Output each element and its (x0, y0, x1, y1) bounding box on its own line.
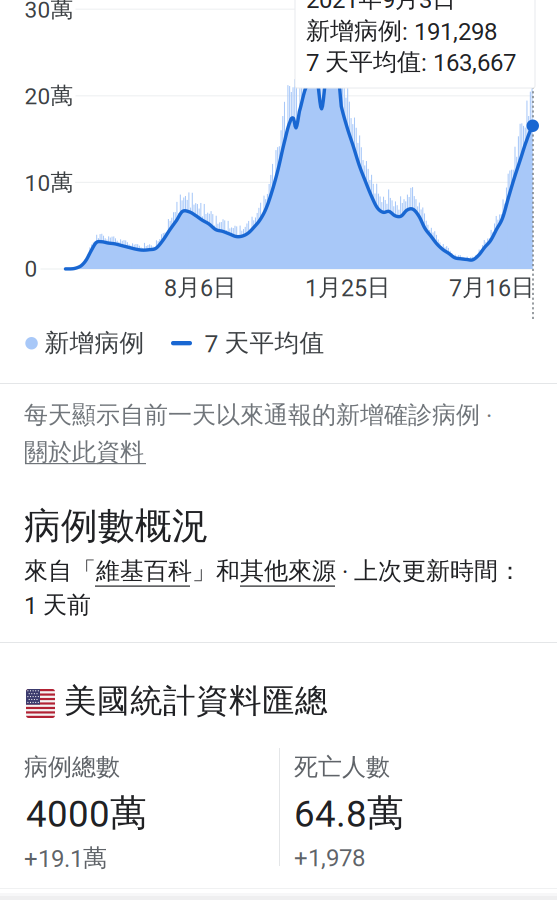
button[interactable]: 關於此資料 (24, 435, 150, 469)
staticText: 新增病例: 191,298 (306, 16, 497, 46)
staticText: 死亡人數 (294, 752, 390, 782)
staticText: 8月6日 (164, 273, 236, 302)
staticText: 新增病例 (44, 327, 144, 359)
staticText: 來自「維基百科」和其他來源 · 上次更新時間： (24, 556, 522, 586)
staticText: +19.1萬 (24, 843, 107, 873)
staticText: 64.8萬 (294, 790, 404, 836)
staticText: 維基百科 (95, 541, 167, 601)
button[interactable]: 維基百科 (95, 558, 190, 584)
staticText: 7 天平均值: 163,667 (306, 47, 516, 77)
staticText: +1,978 (294, 844, 365, 872)
staticText: 其他來源 (240, 541, 312, 601)
staticText: 關於此資料 (24, 437, 144, 467)
staticText: 1 天前 (24, 590, 91, 620)
staticText: 10萬 (24, 168, 73, 197)
staticText: 0 (24, 256, 37, 282)
staticText: 7月16日 (449, 273, 534, 302)
staticText: 美國統計資料匯總 (64, 680, 328, 721)
staticText: 30萬 (24, 0, 73, 23)
staticText: 7 天平均值 (204, 327, 324, 359)
staticText: 1月25日 (305, 273, 390, 302)
staticText: 病例總數 (24, 752, 120, 782)
staticText: 病例數概況 (24, 503, 209, 549)
staticText: 2021年9月3日 (306, 0, 456, 14)
staticText: 4000萬 (26, 790, 147, 836)
staticText: 每天顯示自前一天以來通報的新增確診病例 · (24, 400, 492, 430)
button[interactable]: 其他來源 (240, 558, 335, 584)
staticText: 20萬 (24, 81, 73, 110)
